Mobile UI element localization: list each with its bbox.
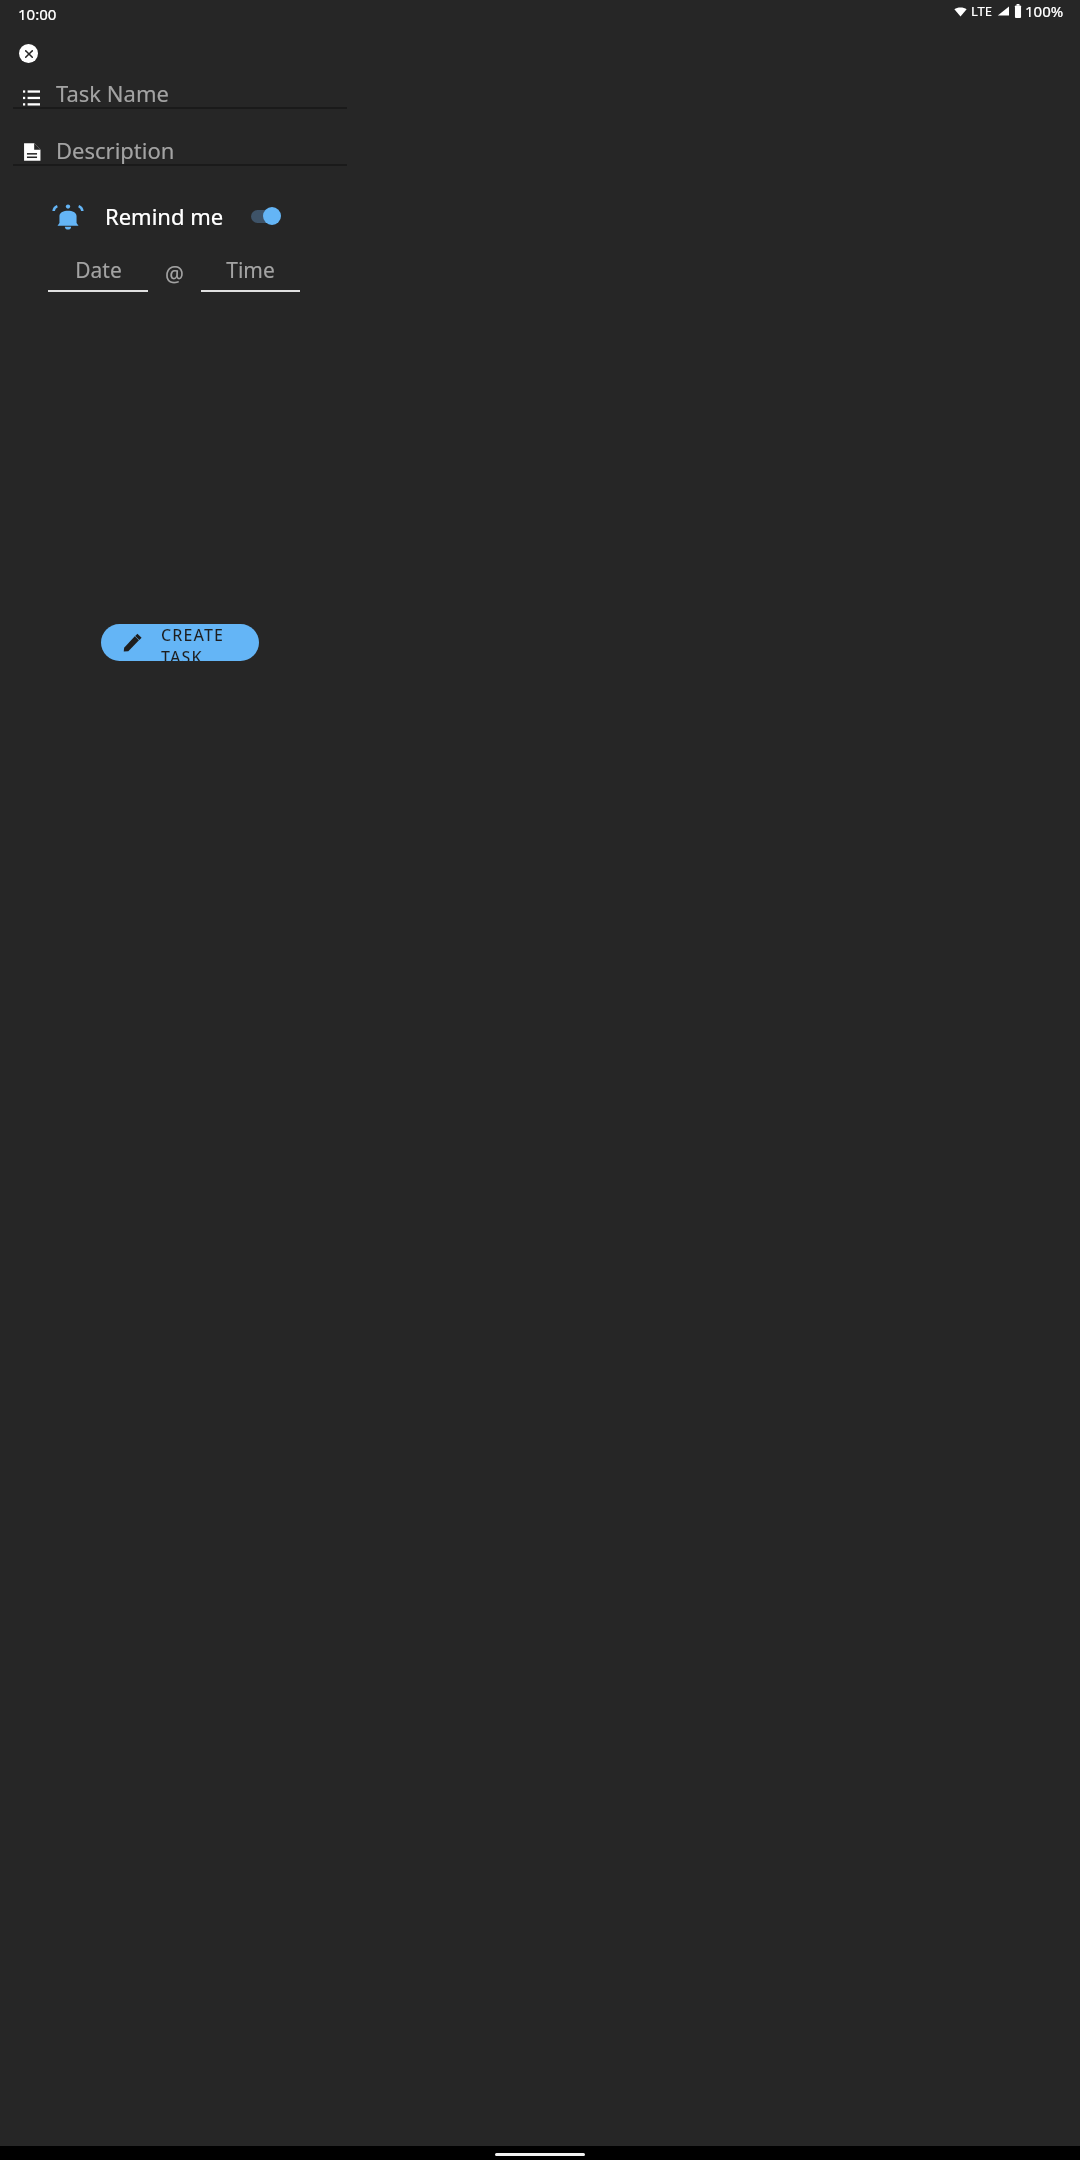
staticText: @	[165, 260, 184, 289]
staticText: Time	[226, 256, 275, 285]
button[interactable]: Remind me	[53, 196, 289, 236]
staticText: CREATE TASK	[161, 624, 259, 661]
staticText: Task Name	[56, 78, 169, 108]
staticText: Description	[56, 135, 175, 165]
button[interactable]: Description	[13, 131, 347, 166]
staticText: 100%	[1025, 1, 1064, 21]
button[interactable]: Close	[19, 44, 38, 63]
button[interactable]: CREATE TASK	[101, 624, 259, 661]
staticText: LTE	[971, 2, 993, 20]
button[interactable]: Time	[201, 256, 300, 292]
staticText: Date	[75, 256, 122, 285]
staticText: Remind me	[105, 201, 224, 231]
button[interactable]: Date	[48, 256, 148, 292]
button[interactable]: Task Name	[13, 74, 347, 109]
staticText: 10:00	[18, 4, 57, 24]
